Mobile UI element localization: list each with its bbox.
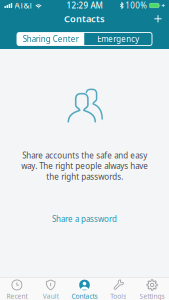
button[interactable]: Vault bbox=[34, 277, 68, 300]
staticText: Emergency bbox=[97, 34, 139, 44]
button[interactable]: Share a password bbox=[52, 213, 117, 225]
button[interactable]: Contacts bbox=[68, 277, 101, 300]
button[interactable]: Sharing Center bbox=[17, 32, 84, 45]
staticText: AT&T bbox=[15, 0, 33, 11]
button[interactable]: Recent bbox=[0, 277, 34, 300]
staticText: Share accounts the safe and easy way. Th… bbox=[21, 150, 148, 182]
staticText: 12:29 AM bbox=[66, 0, 102, 11]
staticText: Vault bbox=[43, 292, 59, 300]
button[interactable]: Tools bbox=[101, 277, 135, 300]
staticText: Share a password bbox=[52, 214, 117, 224]
staticText: Contacts bbox=[64, 12, 105, 25]
staticText: Sharing Center bbox=[23, 34, 79, 44]
button[interactable]: Settings bbox=[135, 277, 169, 300]
staticText: Contacts bbox=[71, 292, 97, 300]
staticText: Tools bbox=[110, 292, 126, 300]
button[interactable]: Add bbox=[148, 12, 169, 26]
staticText: Settings bbox=[140, 292, 165, 300]
button[interactable]: Emergency bbox=[84, 32, 152, 45]
staticText: Recent bbox=[6, 292, 27, 300]
staticText: 100% bbox=[125, 0, 147, 11]
